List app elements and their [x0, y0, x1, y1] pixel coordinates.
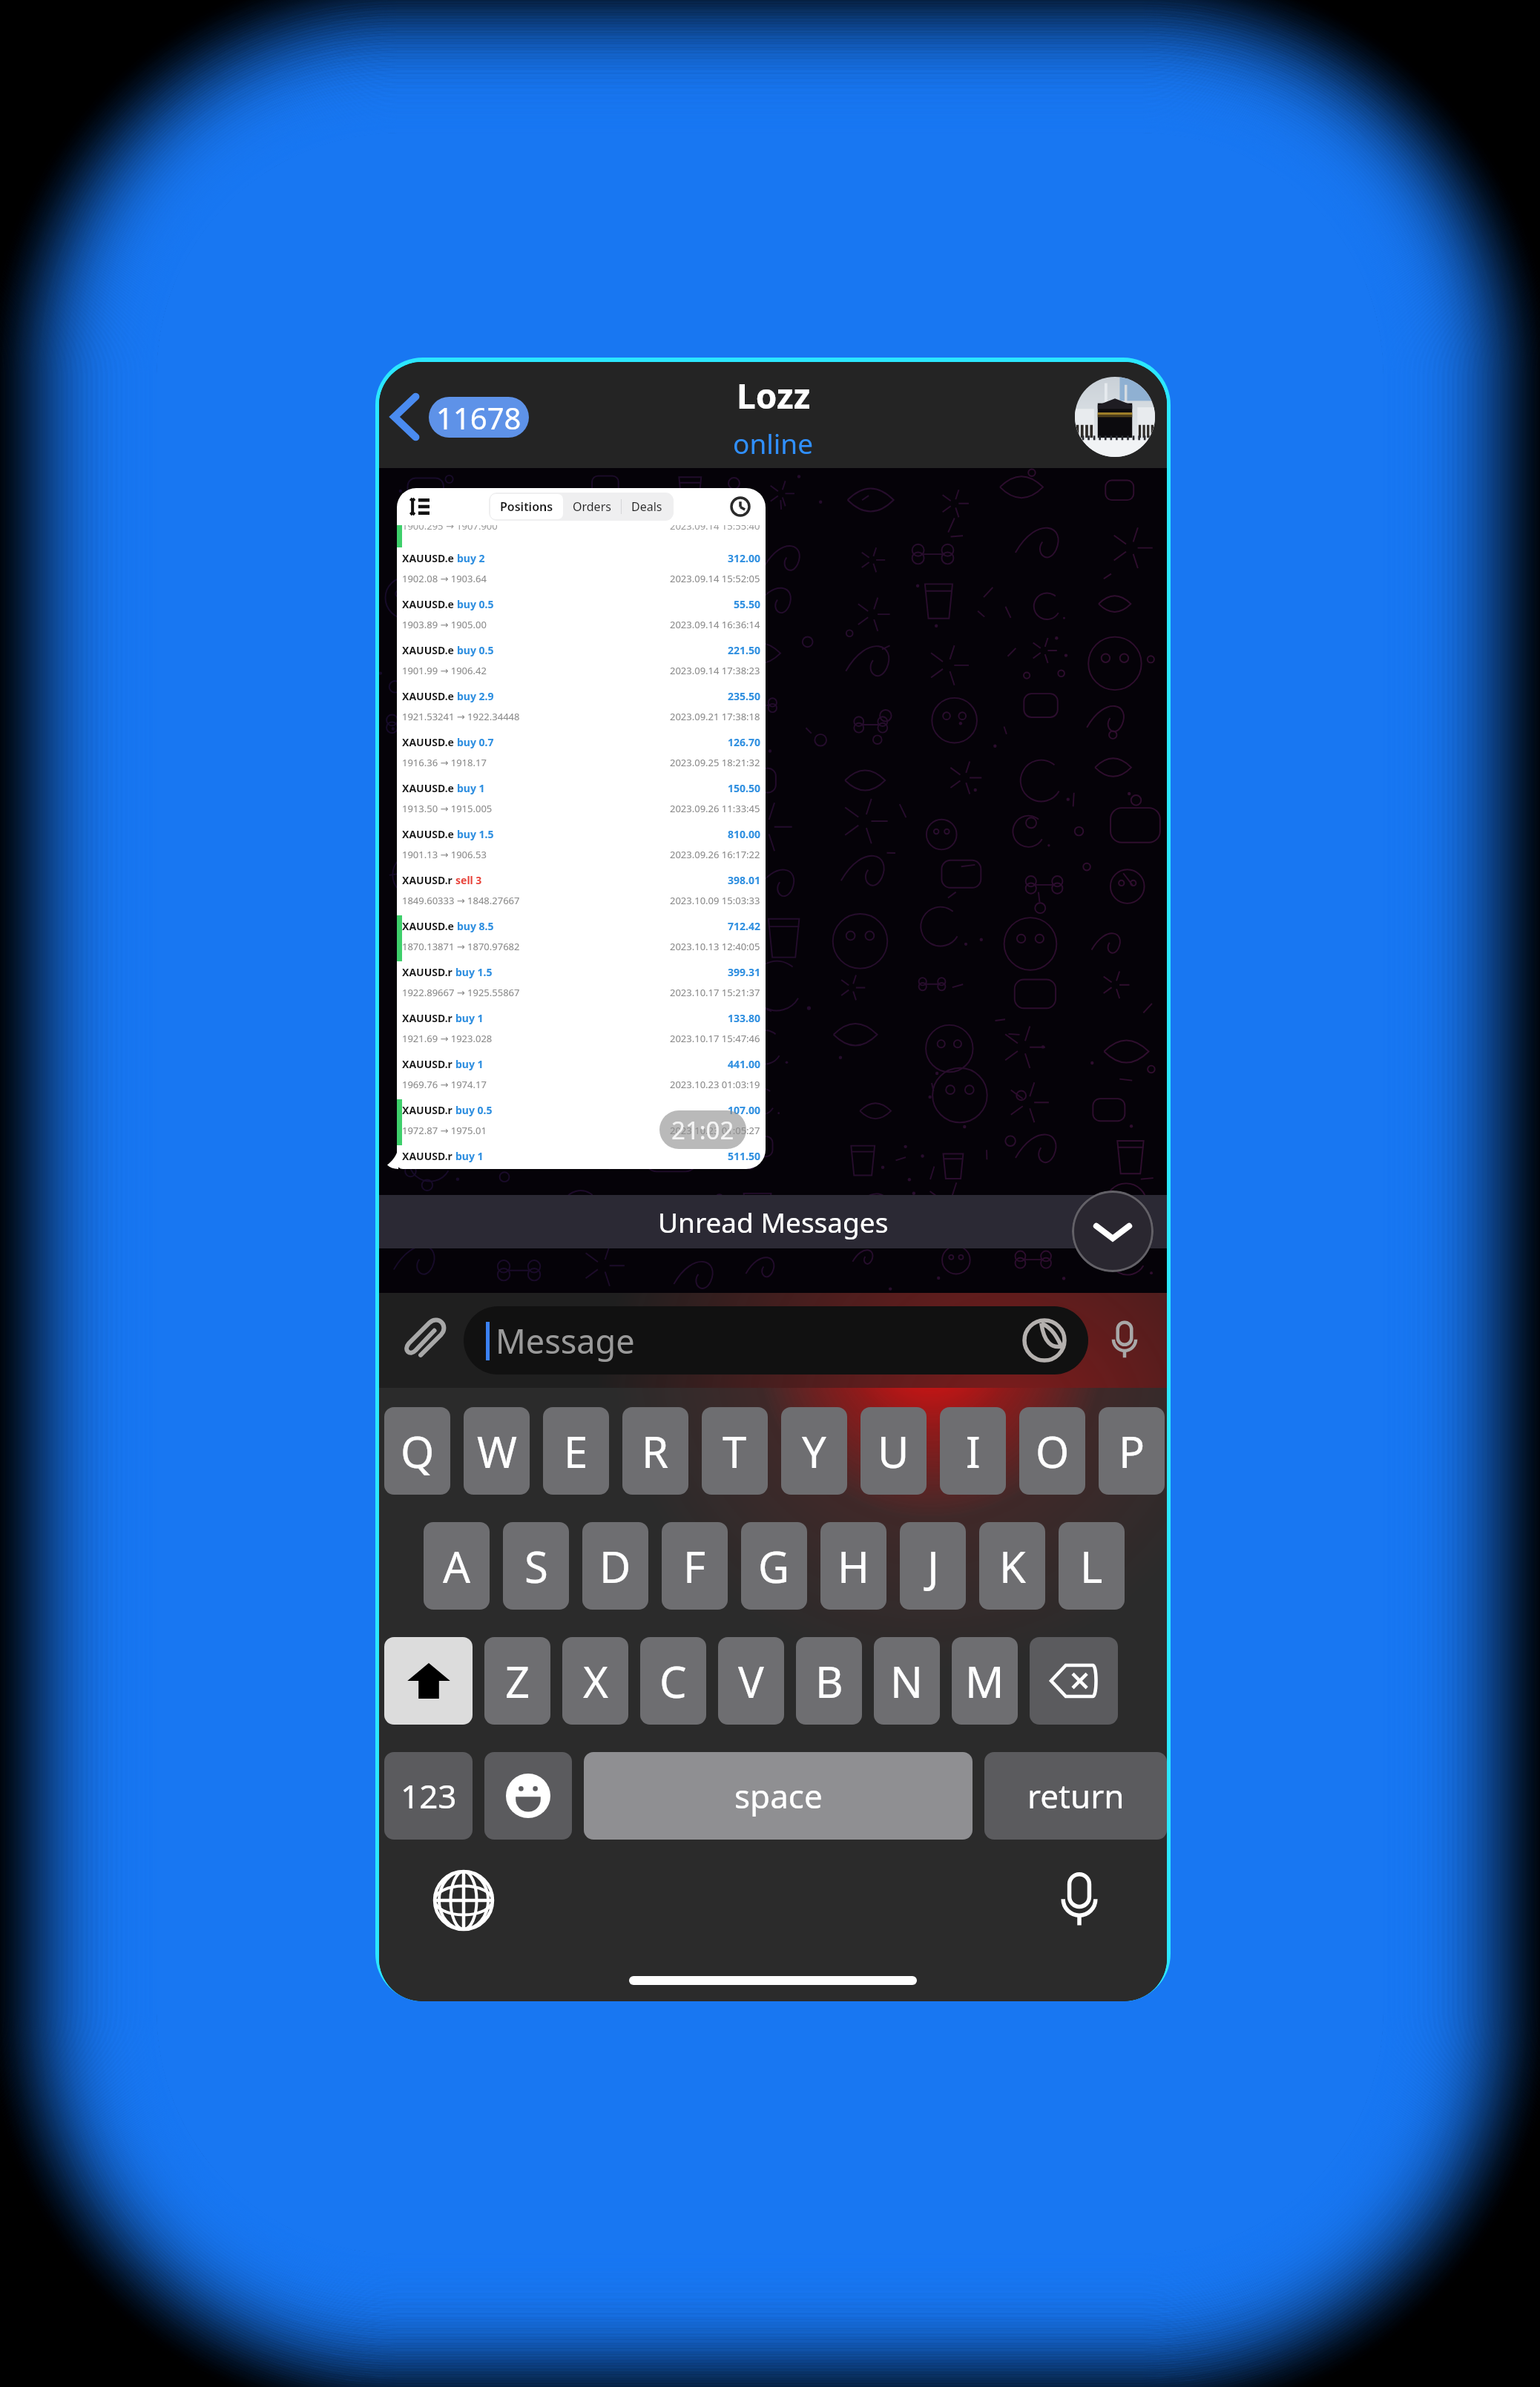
- staticText: J: [927, 1537, 939, 1596]
- button[interactable]: L: [1059, 1522, 1125, 1610]
- staticText: 235.50: [728, 689, 760, 703]
- staticText: 21:02: [671, 1113, 734, 1147]
- staticText: 2023.10.17 15:47:46: [670, 1032, 760, 1045]
- button[interactable]: A: [424, 1522, 490, 1610]
- button[interactable]: I: [940, 1407, 1006, 1495]
- staticText: M: [965, 1652, 1004, 1711]
- staticText: K: [999, 1537, 1026, 1596]
- staticText: 2023.09.21 17:38:18: [670, 710, 760, 723]
- button[interactable]: Positions: [490, 494, 563, 519]
- button[interactable]: Y: [781, 1407, 847, 1495]
- staticText: B: [815, 1652, 843, 1711]
- staticText: 1972.87 → 1975.01: [402, 1124, 487, 1137]
- button[interactable]: M: [952, 1637, 1018, 1725]
- staticText: O: [1036, 1422, 1070, 1481]
- button[interactable]: U: [861, 1407, 927, 1495]
- staticText: F: [683, 1537, 706, 1596]
- staticText: C: [659, 1652, 687, 1711]
- staticText: XAUUSD.e: [402, 781, 454, 795]
- button[interactable]: Attach: [395, 1312, 452, 1369]
- staticText: XAUUSD.e: [402, 643, 454, 657]
- button[interactable]: H: [820, 1522, 886, 1610]
- button[interactable]: XAUUSD.r: [397, 1145, 766, 1169]
- button[interactable]: XAUUSD.e: [397, 777, 766, 823]
- button[interactable]: Voice message: [1099, 1314, 1151, 1366]
- button[interactable]: XAUUSD.e: [397, 593, 766, 639]
- button[interactable]: XAUUSD.e: [397, 685, 766, 731]
- staticText: 2023.10.23 01:03:19: [670, 1078, 760, 1091]
- staticText: 55.50: [734, 597, 760, 611]
- button[interactable]: XAUUSD.e: [397, 731, 766, 777]
- staticText: 11678: [436, 398, 521, 438]
- button[interactable]: XAUUSD.r: [397, 961, 766, 1007]
- button[interactable]: Q: [384, 1407, 450, 1495]
- button[interactable]: XAUUSD.r: [397, 1099, 766, 1145]
- staticText: 441.00: [728, 1057, 760, 1071]
- staticText: 1849.60333 → 1848.27667: [402, 894, 520, 907]
- staticText: 1870.13871 → 1870.97682: [402, 940, 520, 953]
- button[interactable]: K: [979, 1522, 1045, 1610]
- staticText: 511.50: [728, 1149, 760, 1163]
- staticText: 1901.13 → 1906.53: [402, 848, 487, 861]
- button[interactable]: Stickers: [1021, 1317, 1067, 1363]
- button[interactable]: F: [662, 1522, 728, 1610]
- button[interactable]: XAUUSD.e: [397, 547, 766, 593]
- button[interactable]: XAUUSD.e: [397, 915, 766, 961]
- staticText: XAUUSD.e: [402, 597, 454, 611]
- staticText: buy 0.5: [457, 643, 494, 657]
- button[interactable]: Emoji: [484, 1752, 572, 1840]
- button[interactable]: XAUUSD.r: [397, 1007, 766, 1053]
- button[interactable]: V: [718, 1637, 784, 1725]
- button[interactable]: Shift: [384, 1637, 473, 1725]
- button[interactable]: C: [640, 1637, 706, 1725]
- button[interactable]: N: [874, 1637, 940, 1725]
- button[interactable]: 123: [384, 1752, 473, 1840]
- staticText: space: [734, 1774, 823, 1818]
- button[interactable]: X: [562, 1637, 628, 1725]
- staticText: 2023.09.25 18:21:32: [670, 756, 760, 769]
- button[interactable]: P: [1099, 1407, 1165, 1495]
- button[interactable]: space: [584, 1752, 973, 1840]
- staticText: V: [738, 1652, 764, 1711]
- button[interactable]: W: [464, 1407, 530, 1495]
- button[interactable]: XAUUSD.e: [397, 823, 766, 869]
- button[interactable]: J: [900, 1522, 966, 1610]
- button[interactable]: Profile photo: [1075, 377, 1155, 457]
- staticText: 1913.50 → 1915.005: [402, 802, 493, 815]
- button[interactable]: Back: [388, 394, 532, 440]
- button[interactable]: Change language: [432, 1869, 495, 1932]
- button[interactable]: Backspace: [1030, 1637, 1118, 1725]
- button[interactable]: XAUUSD.r: [397, 869, 766, 915]
- button[interactable]: History: [730, 496, 751, 517]
- button[interactable]: XAUUSD.r: [397, 1053, 766, 1099]
- staticText: XAUUSD.e: [402, 689, 454, 703]
- button[interactable]: T: [702, 1407, 768, 1495]
- staticText: I: [966, 1422, 981, 1481]
- button[interactable]: G: [741, 1522, 807, 1610]
- button[interactable]: D: [582, 1522, 648, 1610]
- button[interactable]: E: [543, 1407, 609, 1495]
- staticText: 2023.09.14 16:36:14: [670, 618, 760, 631]
- staticText: buy 1: [457, 781, 485, 795]
- staticText: 2023.09.26 11:33:45: [670, 802, 760, 815]
- button[interactable]: return: [984, 1752, 1167, 1840]
- staticText: H: [838, 1537, 869, 1596]
- button[interactable]: Unread Messages: [379, 1195, 1167, 1248]
- staticText: 123: [401, 1774, 457, 1818]
- button[interactable]: O: [1019, 1407, 1085, 1495]
- button[interactable]: R: [622, 1407, 688, 1495]
- button[interactable]: Scroll to bottom: [1072, 1191, 1154, 1272]
- button[interactable]: Dictation: [1048, 1869, 1110, 1932]
- staticText: XAUUSD.r: [402, 1057, 453, 1071]
- staticText: return: [1027, 1774, 1125, 1818]
- staticText: P: [1119, 1422, 1145, 1481]
- button[interactable]: Z: [484, 1637, 550, 1725]
- button[interactable]: XAUUSD.e: [397, 639, 766, 685]
- staticText: Z: [505, 1652, 530, 1711]
- button[interactable]: Deals: [622, 494, 672, 519]
- button[interactable]: B: [796, 1637, 862, 1725]
- button[interactable]: Orders: [563, 494, 621, 519]
- button[interactable]: Positions: [397, 488, 766, 1169]
- button[interactable]: Message: [464, 1306, 1088, 1374]
- button[interactable]: S: [503, 1522, 569, 1610]
